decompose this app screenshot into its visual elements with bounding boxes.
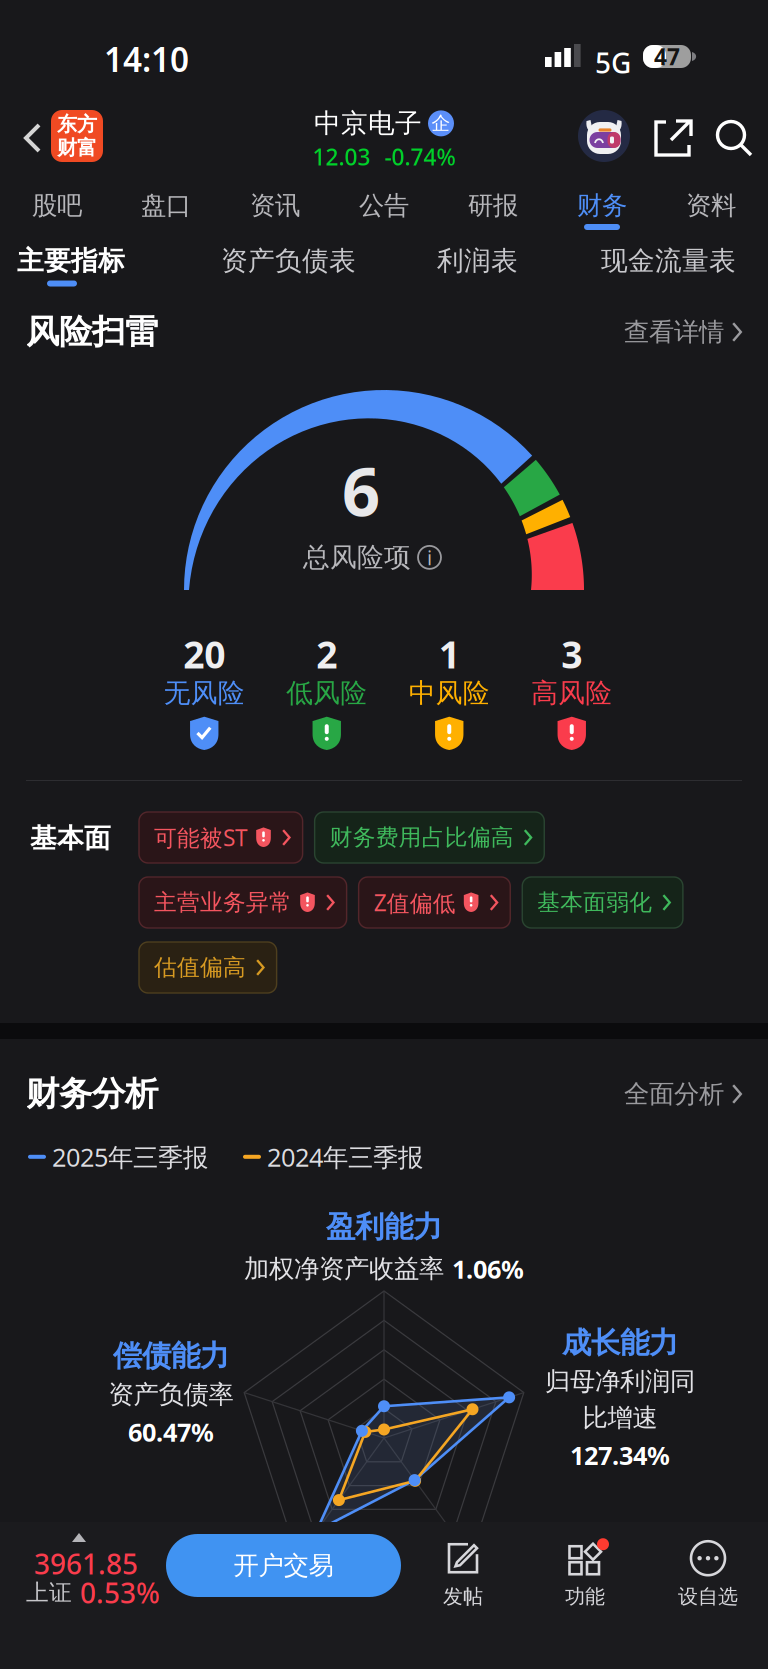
button[interactable]: 研报 — [461, 178, 525, 240]
staticText: 成长能力 — [562, 1325, 678, 1361]
button[interactable]: 现金流量表 — [601, 237, 736, 305]
button[interactable]: 利润表 — [437, 237, 518, 305]
staticText: 资产负债率 — [108, 1379, 233, 1410]
staticText: 资产负债表 — [221, 244, 356, 277]
staticText: 财富 — [57, 135, 97, 160]
button[interactable]: Back — [12, 112, 53, 164]
button[interactable]: 功能 — [535, 1532, 635, 1618]
staticText: 财务费用占比偏高 — [330, 824, 514, 851]
staticText: 股吧 — [32, 190, 82, 221]
staticText: 总风险项 — [303, 541, 411, 574]
button[interactable]: 股吧 — [25, 178, 89, 240]
staticText: 基本面 — [30, 822, 111, 855]
staticText: 企 — [431, 112, 450, 135]
staticText: 设自选 — [678, 1584, 738, 1609]
staticText: 利润表 — [437, 244, 518, 277]
button[interactable]: Z值偏低 — [359, 877, 510, 928]
staticText: 资料 — [686, 190, 736, 221]
staticText: 无风险 — [164, 677, 245, 709]
staticText: 风险扫雷 — [26, 311, 158, 352]
staticText: 12.03 — [312, 142, 370, 172]
staticText: 估值偏高 — [154, 954, 246, 981]
staticText: 现金流量表 — [601, 244, 736, 277]
staticText: 资讯 — [250, 190, 300, 221]
staticText: 1 — [439, 629, 460, 679]
staticText: 2025年三季报 — [52, 1140, 208, 1174]
button[interactable]: 主营业务异常 — [139, 877, 347, 928]
button[interactable]: 查看详情 — [624, 316, 742, 347]
staticText: 3961.85 — [34, 1545, 138, 1582]
button[interactable]: 开户交易 — [166, 1534, 401, 1597]
staticText: 可能被ST — [154, 822, 248, 852]
staticText: 功能 — [565, 1584, 605, 1609]
button[interactable]: 设自选 — [658, 1532, 758, 1618]
button[interactable]: 主要指标 — [26, 237, 116, 298]
staticText: i — [427, 544, 432, 571]
staticText: 盈利能力 — [326, 1209, 442, 1245]
button[interactable]: Search — [706, 111, 762, 167]
staticText: 中京电子 — [314, 107, 422, 140]
staticText: -0.74% — [384, 142, 455, 172]
button[interactable]: 基本面弱化 — [522, 877, 683, 928]
button[interactable]: 可能被ST — [139, 812, 303, 863]
staticText: 中风险 — [409, 677, 490, 709]
staticText: 6 — [342, 446, 380, 534]
staticText: 主要指标 — [17, 244, 125, 277]
staticText: Z值偏低 — [374, 887, 456, 918]
button[interactable]: East Money — [51, 110, 103, 162]
staticText: 14:10 — [104, 37, 189, 81]
button[interactable]: 财务 — [570, 178, 634, 240]
staticText: 127.34% — [570, 1438, 670, 1472]
staticText: 高风险 — [531, 677, 612, 709]
staticText: 发帖 — [443, 1584, 483, 1609]
staticText: 归母净利润同 — [545, 1366, 695, 1397]
button[interactable]: Share — [644, 110, 702, 168]
button[interactable]: 发帖 — [413, 1532, 513, 1618]
staticText: 财务分析 — [26, 1073, 158, 1114]
button[interactable]: 公告 — [352, 178, 416, 240]
staticText: 20 — [183, 629, 225, 679]
staticText: 1.06% — [452, 1252, 524, 1286]
staticText: 2 — [316, 629, 337, 679]
button[interactable]: Profile — [578, 110, 630, 162]
button[interactable]: 资料 — [679, 178, 743, 240]
staticText: 加权净资产收益率 — [244, 1253, 444, 1284]
staticText: 财务 — [577, 190, 627, 221]
button[interactable]: 资讯 — [243, 178, 307, 240]
staticText: 5G — [595, 44, 631, 81]
staticText: 60.47% — [128, 1415, 214, 1449]
staticText: 研报 — [468, 190, 518, 221]
staticText: 全面分析 — [624, 1078, 724, 1109]
staticText: 开户交易 — [233, 1550, 333, 1581]
staticText: 低风险 — [286, 677, 367, 709]
staticText: 比增速 — [582, 1402, 657, 1433]
staticText: 偿债能力 — [113, 1338, 229, 1374]
staticText: 2024年三季报 — [267, 1140, 423, 1174]
staticText: 基本面弱化 — [537, 889, 652, 916]
button[interactable]: 财务费用占比偏高 — [315, 812, 544, 863]
staticText: 3 — [561, 629, 582, 679]
button[interactable]: 估值偏高 — [139, 942, 277, 993]
staticText: 公告 — [359, 190, 409, 221]
button[interactable]: 资产负债表 — [221, 237, 356, 305]
staticText: 主营业务异常 — [154, 889, 292, 916]
button[interactable]: 全面分析 — [624, 1078, 742, 1109]
staticText: 东方 — [57, 112, 97, 136]
staticText: 上证 — [26, 1579, 72, 1606]
staticText: 47 — [654, 41, 680, 71]
staticText: 0.53% — [80, 1574, 160, 1611]
button[interactable]: 盘口 — [134, 178, 198, 240]
staticText: 盘口 — [141, 190, 191, 221]
staticText: 查看详情 — [624, 316, 724, 347]
